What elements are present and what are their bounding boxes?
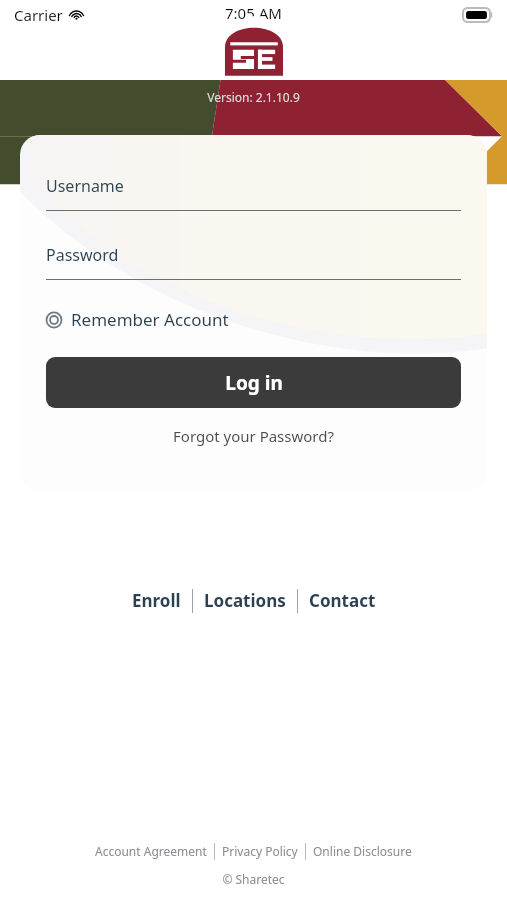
staticText: © Sharetec [222, 871, 285, 887]
staticText: Carrier [14, 5, 63, 25]
button[interactable]: Account Agreement [88, 840, 214, 862]
staticText: Username [46, 175, 124, 197]
staticText: Password [46, 244, 119, 266]
staticText: Contact [309, 589, 376, 612]
staticText: Locations [204, 589, 286, 612]
button[interactable]: Privacy Policy [215, 840, 305, 862]
staticText: Online Disclosure [313, 843, 412, 859]
staticText: Account Agreement [95, 843, 207, 859]
button[interactable]: Online Disclosure [306, 840, 419, 862]
button[interactable]: Password [46, 244, 461, 280]
staticText: 7:05 AM [225, 3, 282, 23]
staticText: Version: 2.1.10.9 [207, 89, 300, 105]
button[interactable]: Remember Account [46, 308, 229, 331]
staticText: Remember Account [71, 308, 229, 331]
staticText: Forgot your Password? [173, 426, 334, 446]
staticText: Log in [225, 370, 283, 396]
button[interactable]: Contact [298, 585, 387, 616]
staticText: Enroll [132, 589, 181, 612]
button[interactable]: Enroll [121, 585, 192, 616]
staticText: Privacy Policy [222, 843, 298, 859]
button[interactable]: Forgot your Password? [46, 426, 461, 446]
button[interactable]: Username [46, 175, 461, 211]
button[interactable]: Locations [193, 585, 297, 616]
button[interactable]: Log in [46, 357, 461, 408]
